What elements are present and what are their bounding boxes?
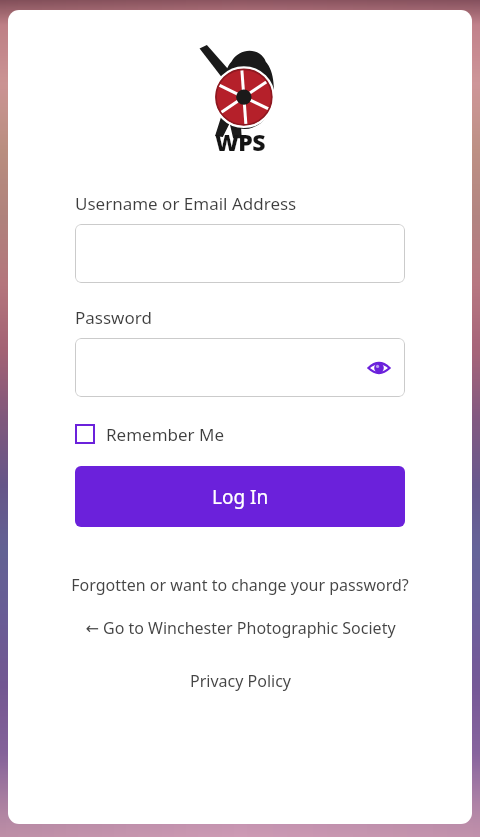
button[interactable]: Forgotten or want to change your passwor…: [52, 574, 428, 596]
staticText: Remember Me: [106, 423, 225, 446]
staticText: Password: [75, 306, 152, 329]
staticText: ← Go to Winchester Photographic Society: [85, 617, 396, 639]
button[interactable]: Show password: [364, 353, 394, 383]
button[interactable]: Log In: [75, 466, 405, 527]
staticText: Privacy Policy: [190, 670, 291, 692]
staticText: WPS: [215, 126, 265, 157]
button[interactable]: Privacy Policy: [8, 670, 472, 692]
button[interactable]: [75, 224, 405, 283]
button[interactable]: Remember Me: [75, 419, 225, 449]
staticText: Forgotten or want to change your passwor…: [71, 574, 409, 596]
staticText: Username or Email Address: [75, 192, 297, 215]
button[interactable]: ← Go to Winchester Photographic Society: [48, 617, 432, 639]
staticText: Log In: [212, 484, 269, 510]
button[interactable]: Show password: [75, 338, 405, 397]
